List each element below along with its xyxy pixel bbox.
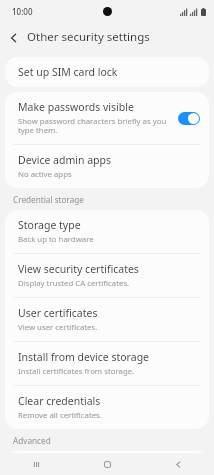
button[interactable]: Make passwords visible, on: [178, 112, 200, 125]
button[interactable]: Device admin apps: [5, 145, 209, 188]
button[interactable]: Home: [72, 453, 143, 475]
staticText: Storage type: [18, 218, 81, 232]
staticText: Show password characters briefly as you …: [18, 116, 173, 136]
button[interactable]: Clear credentials: [5, 386, 209, 429]
button[interactable]: View security certificates: [5, 254, 209, 297]
staticText: Install from device storage: [18, 350, 150, 364]
button[interactable]: Trust agents: [5, 451, 209, 475]
staticText: Set up SIM card lock: [18, 65, 118, 79]
staticText: User certificates: [18, 306, 98, 320]
staticText: 10:00: [12, 6, 33, 17]
staticText: View security certificates: [18, 262, 139, 276]
staticText: Back up to hardware: [18, 234, 94, 245]
button[interactable]: Install from device storage: [5, 342, 209, 385]
staticText: Device admin apps: [18, 153, 112, 167]
staticText: Credential storage: [13, 194, 84, 205]
staticText: Clear credentials: [18, 394, 101, 408]
button[interactable]: Recent apps: [0, 453, 72, 475]
staticText: Remove all certificates.: [18, 410, 102, 421]
staticText: Other security settings: [27, 29, 150, 45]
staticText: Advanced: [13, 435, 51, 446]
button[interactable]: User certificates: [5, 298, 209, 341]
staticText: No active apps: [18, 169, 72, 180]
button[interactable]: Set up SIM card lock: [5, 57, 209, 87]
staticText: Make passwords visible: [18, 100, 134, 114]
staticText: Trust agents: [18, 459, 80, 467]
staticText: Install certificates from storage.: [18, 366, 135, 377]
button[interactable]: Back: [143, 453, 214, 475]
staticText: Display trusted CA certificates.: [18, 278, 130, 289]
button[interactable]: Storage type: [5, 210, 209, 253]
button[interactable]: Make passwords visible: [5, 92, 209, 144]
button[interactable]: Navigate up: [0, 24, 27, 51]
staticText: View user certificates.: [18, 322, 98, 333]
